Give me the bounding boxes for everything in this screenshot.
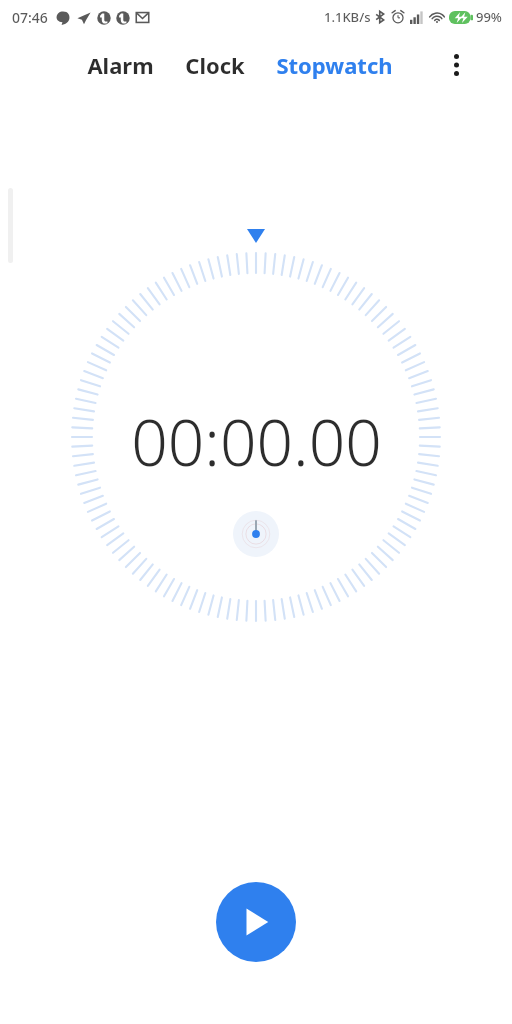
staticText: Stopwatch	[276, 50, 393, 80]
staticText: 00:00.00	[131, 398, 382, 485]
staticText: Alarm	[87, 50, 154, 80]
staticText: 07:46	[12, 8, 48, 27]
button[interactable]: Alarm	[85, 44, 156, 86]
staticText: Clock	[185, 50, 245, 80]
button[interactable]: Clock	[183, 44, 247, 86]
staticText: 1.1KB/s	[324, 8, 371, 26]
button[interactable]: Stopwatch	[274, 44, 395, 86]
button[interactable]: Lap	[233, 511, 279, 557]
staticText: 99%	[476, 8, 502, 26]
button[interactable]: More options	[440, 49, 472, 81]
button[interactable]: Start stopwatch	[216, 882, 296, 962]
